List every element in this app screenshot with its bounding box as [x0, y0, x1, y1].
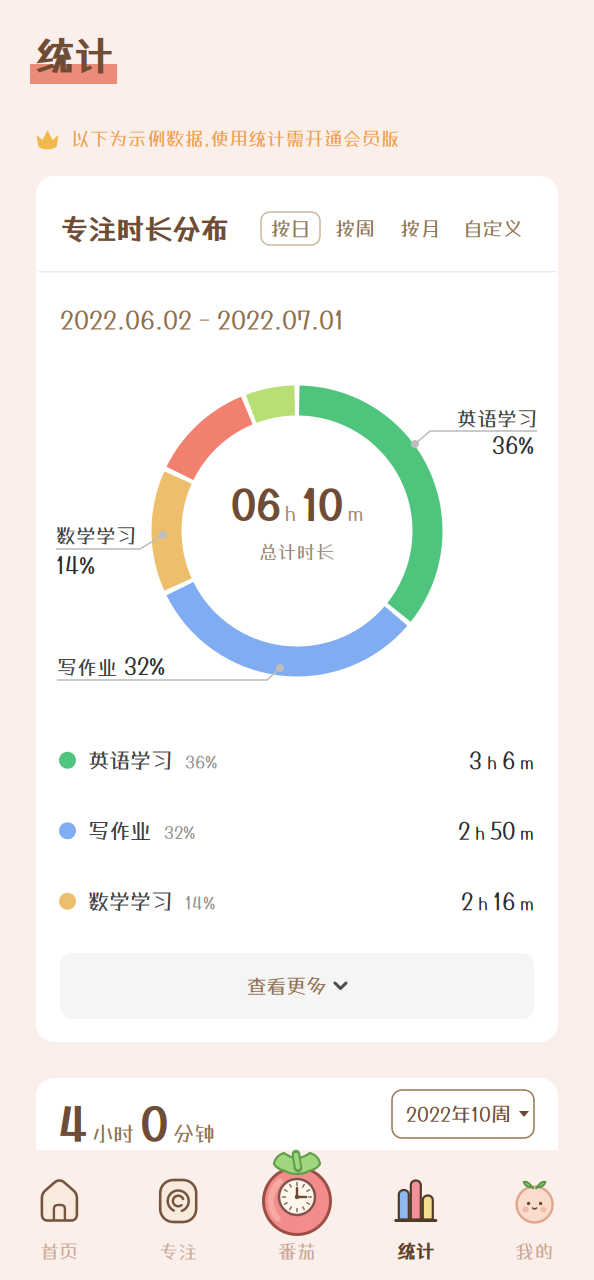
staticText: h [284, 502, 296, 525]
staticText: 数学学习 [56, 524, 136, 547]
staticText: 写作业 [88, 818, 151, 843]
staticText: 数学学习 [88, 889, 172, 913]
staticText: 2022年10周 [406, 1102, 511, 1125]
staticText: 按日 [270, 217, 310, 240]
button[interactable]: 我的 [475, 1150, 594, 1262]
staticText: 32% [124, 653, 165, 679]
staticText: 统计 [35, 34, 113, 78]
button[interactable]: 按日 [261, 212, 320, 245]
staticText: 以下为示例数据,使用统计需开通会员版 [71, 128, 400, 149]
staticText: m [520, 893, 534, 913]
staticText: 4 [58, 1098, 86, 1150]
button[interactable]: 番茄 [238, 1150, 356, 1262]
button[interactable]: 2022年10周 [392, 1090, 534, 1138]
staticText: h [475, 823, 485, 843]
button[interactable]: 统计 [356, 1150, 475, 1262]
staticText: 按月 [400, 217, 440, 240]
button[interactable]: 按周 [335, 217, 375, 240]
staticText: 16 [493, 888, 515, 914]
staticText: 14% [56, 552, 95, 578]
staticText: 14% [185, 893, 215, 913]
staticText: 专注 [159, 1240, 197, 1262]
staticText: 32% [164, 822, 195, 842]
staticText: 分钟 [173, 1121, 215, 1146]
staticText: 2 [458, 818, 470, 844]
staticText: 英语学习 [88, 748, 172, 772]
staticText: 50 [490, 818, 515, 844]
staticText: 36% [492, 432, 534, 458]
staticText: 我的 [516, 1240, 554, 1262]
button[interactable]: 查看更多 [60, 953, 534, 1019]
staticText: m [520, 752, 534, 772]
staticText: 按周 [335, 217, 375, 240]
staticText: 2 [461, 888, 473, 914]
button[interactable]: 自定义 [463, 217, 523, 240]
staticText: 统计 [397, 1240, 435, 1262]
staticText: 06 [230, 481, 279, 529]
staticText: 0 [140, 1098, 167, 1150]
button[interactable]: 以下为示例数据,使用统计需开通会员版 [35, 126, 400, 151]
button[interactable]: 专注 [119, 1150, 238, 1262]
staticText: 2022.06.02 - 2022.07.01 [60, 305, 344, 334]
staticText: h [487, 752, 497, 772]
staticText: 首页 [40, 1240, 78, 1262]
button[interactable]: 首页 [0, 1150, 119, 1262]
staticText: 写作业 [57, 656, 117, 679]
staticText: h [478, 893, 488, 913]
button[interactable]: 按月 [400, 217, 440, 240]
staticText: 番茄 [278, 1240, 316, 1262]
staticText: 6 [502, 747, 515, 773]
staticText: 10 [301, 481, 342, 529]
staticText: 英语学习 [457, 407, 537, 430]
staticText: 总计时长 [259, 541, 335, 562]
staticText: 36% [185, 752, 217, 772]
staticText: 小时 [92, 1121, 134, 1146]
staticText: m [347, 502, 363, 525]
staticText: 专注时长分布 [60, 213, 228, 245]
staticText: 3 [469, 747, 482, 773]
staticText: 自定义 [463, 217, 523, 240]
staticText: m [520, 823, 534, 843]
staticText: 查看更多 [246, 974, 326, 997]
